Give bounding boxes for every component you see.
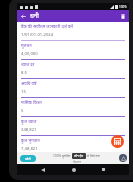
staticText: ब्याज दर bbox=[21, 62, 35, 68]
staticText: 8.5 bbox=[21, 70, 27, 76]
button[interactable]: Home bbox=[69, 165, 78, 174]
button[interactable]: Recent apps bbox=[99, 165, 108, 174]
button[interactable]: कुल भुगतान bbox=[17, 136, 129, 152]
staticText: बैंक की सर्वोत्तम जानकारी दर्ज करें bbox=[21, 24, 73, 30]
staticText: मासिक किस्त bbox=[21, 100, 42, 106]
staticText: 100% bbox=[119, 5, 127, 9]
button[interactable]: बैंक की सर्वोत्तम जानकारी दर्ज करें bbox=[17, 22, 129, 41]
staticText: मूलधन bbox=[21, 43, 32, 49]
button[interactable]: मासिक किस्त bbox=[17, 98, 129, 117]
staticText: कुल भुगतान bbox=[21, 138, 40, 144]
button[interactable]: ब्याज दर bbox=[17, 60, 129, 79]
button[interactable]: कुल ब्याज bbox=[17, 117, 129, 136]
button[interactable]: Advertiser info bbox=[119, 154, 127, 162]
staticText: कुल ब्याज bbox=[21, 119, 37, 125]
button[interactable]: खोलें bbox=[20, 155, 36, 162]
button[interactable]: अवधि वर्ष bbox=[17, 79, 129, 98]
button[interactable]: Delete bbox=[118, 12, 127, 21]
staticText: खोलें bbox=[25, 157, 31, 161]
button[interactable]: Back bbox=[38, 165, 47, 174]
staticText: लोन ऐप bbox=[74, 154, 84, 158]
button[interactable]: मूलधन bbox=[17, 41, 129, 60]
button[interactable]: Calculate bbox=[111, 135, 124, 148]
staticText: 15 bbox=[21, 89, 26, 95]
staticText: 100% सुरक्षित bbox=[53, 154, 72, 158]
staticText: से मिले तक bbox=[86, 154, 100, 158]
staticText: 1/01/01-01-2024 bbox=[21, 32, 54, 38]
staticText: 4,00,000 bbox=[21, 51, 38, 57]
staticText: 5 bbox=[21, 108, 24, 114]
staticText: अवधि वर्ष bbox=[21, 81, 37, 87]
button[interactable]: Back bbox=[19, 12, 28, 21]
staticText: 7,48,821 bbox=[21, 146, 38, 152]
staticText: 348,821 bbox=[21, 127, 37, 133]
staticText: विज्ञापन bbox=[73, 160, 81, 164]
staticText: धनी bbox=[30, 12, 39, 20]
